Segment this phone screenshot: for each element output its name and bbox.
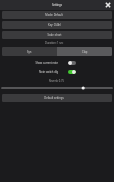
staticText: Default settings: [44, 96, 64, 100]
button[interactable]: Reverb slider: [2, 85, 112, 91]
staticText: Reverb: 0.75: [49, 79, 64, 83]
button[interactable]: Clap: [57, 47, 112, 56]
button[interactable]: Syn: [2, 47, 57, 56]
button[interactable]: Key: C(4th): [2, 21, 112, 29]
button[interactable]: Scale: short: [2, 31, 112, 39]
staticText: Clap: [82, 50, 88, 54]
button[interactable]: Show current note: [2, 58, 112, 67]
button[interactable]: Close: [104, 1, 112, 9]
button[interactable]: Mode: Default: [2, 11, 112, 19]
staticText: Note switch dlg: [2, 70, 58, 74]
button[interactable]: Default settings: [2, 94, 112, 102]
staticText: Mode: Default: [45, 13, 63, 17]
staticText: Settings: [52, 3, 62, 7]
staticText: Key: C(4th): [48, 23, 61, 27]
staticText: Duration: 1 sec: [45, 41, 64, 45]
staticText: Show current note: [2, 61, 58, 65]
staticText: Scale: short: [47, 33, 62, 37]
staticText: Syn: [27, 50, 32, 54]
button[interactable]: Note switch dlg: [2, 67, 112, 76]
